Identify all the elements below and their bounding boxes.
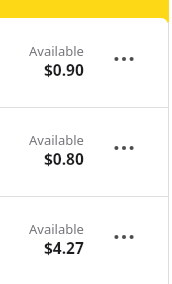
button[interactable]: More options bbox=[107, 222, 141, 252]
staticText: Available bbox=[29, 220, 84, 238]
button[interactable]: More options bbox=[107, 44, 141, 74]
staticText: Available bbox=[29, 131, 84, 149]
staticText: Available bbox=[29, 42, 84, 60]
staticText: $0.80 bbox=[44, 148, 84, 169]
button[interactable]: More options bbox=[107, 133, 141, 163]
button[interactable]: Available bbox=[0, 18, 168, 107]
staticText: $4.27 bbox=[44, 237, 84, 258]
staticText: $0.90 bbox=[44, 59, 84, 80]
button[interactable]: Available bbox=[0, 196, 168, 284]
button[interactable]: Available bbox=[0, 107, 168, 196]
